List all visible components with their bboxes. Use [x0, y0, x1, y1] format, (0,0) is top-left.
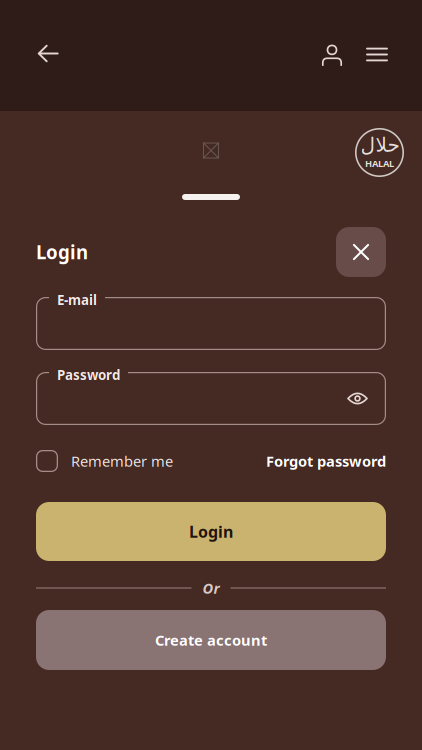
staticText: Create account: [155, 630, 267, 650]
button[interactable]: Forgot password: [266, 451, 386, 471]
image: [203, 142, 219, 158]
staticText: Login: [189, 521, 233, 542]
button[interactable]: Create account: [36, 610, 386, 670]
button[interactable]: Show password: [347, 391, 368, 405]
button[interactable]: Menu: [357, 33, 397, 77]
button[interactable]: Back: [26, 33, 70, 77]
button[interactable]: Remember me: [36, 450, 173, 472]
staticText: حلال: [360, 133, 399, 156]
button[interactable]: Login: [36, 502, 386, 561]
button[interactable]: Account: [312, 33, 352, 77]
staticText: Login: [36, 240, 88, 264]
staticText: E-mail: [57, 291, 97, 309]
staticText: Forgot password: [266, 451, 386, 471]
staticText: HALAL: [365, 157, 394, 170]
staticText: Remember me: [71, 451, 173, 471]
staticText: Password: [57, 366, 120, 384]
button[interactable]: Close: [336, 227, 386, 277]
staticText: Or: [202, 578, 219, 598]
